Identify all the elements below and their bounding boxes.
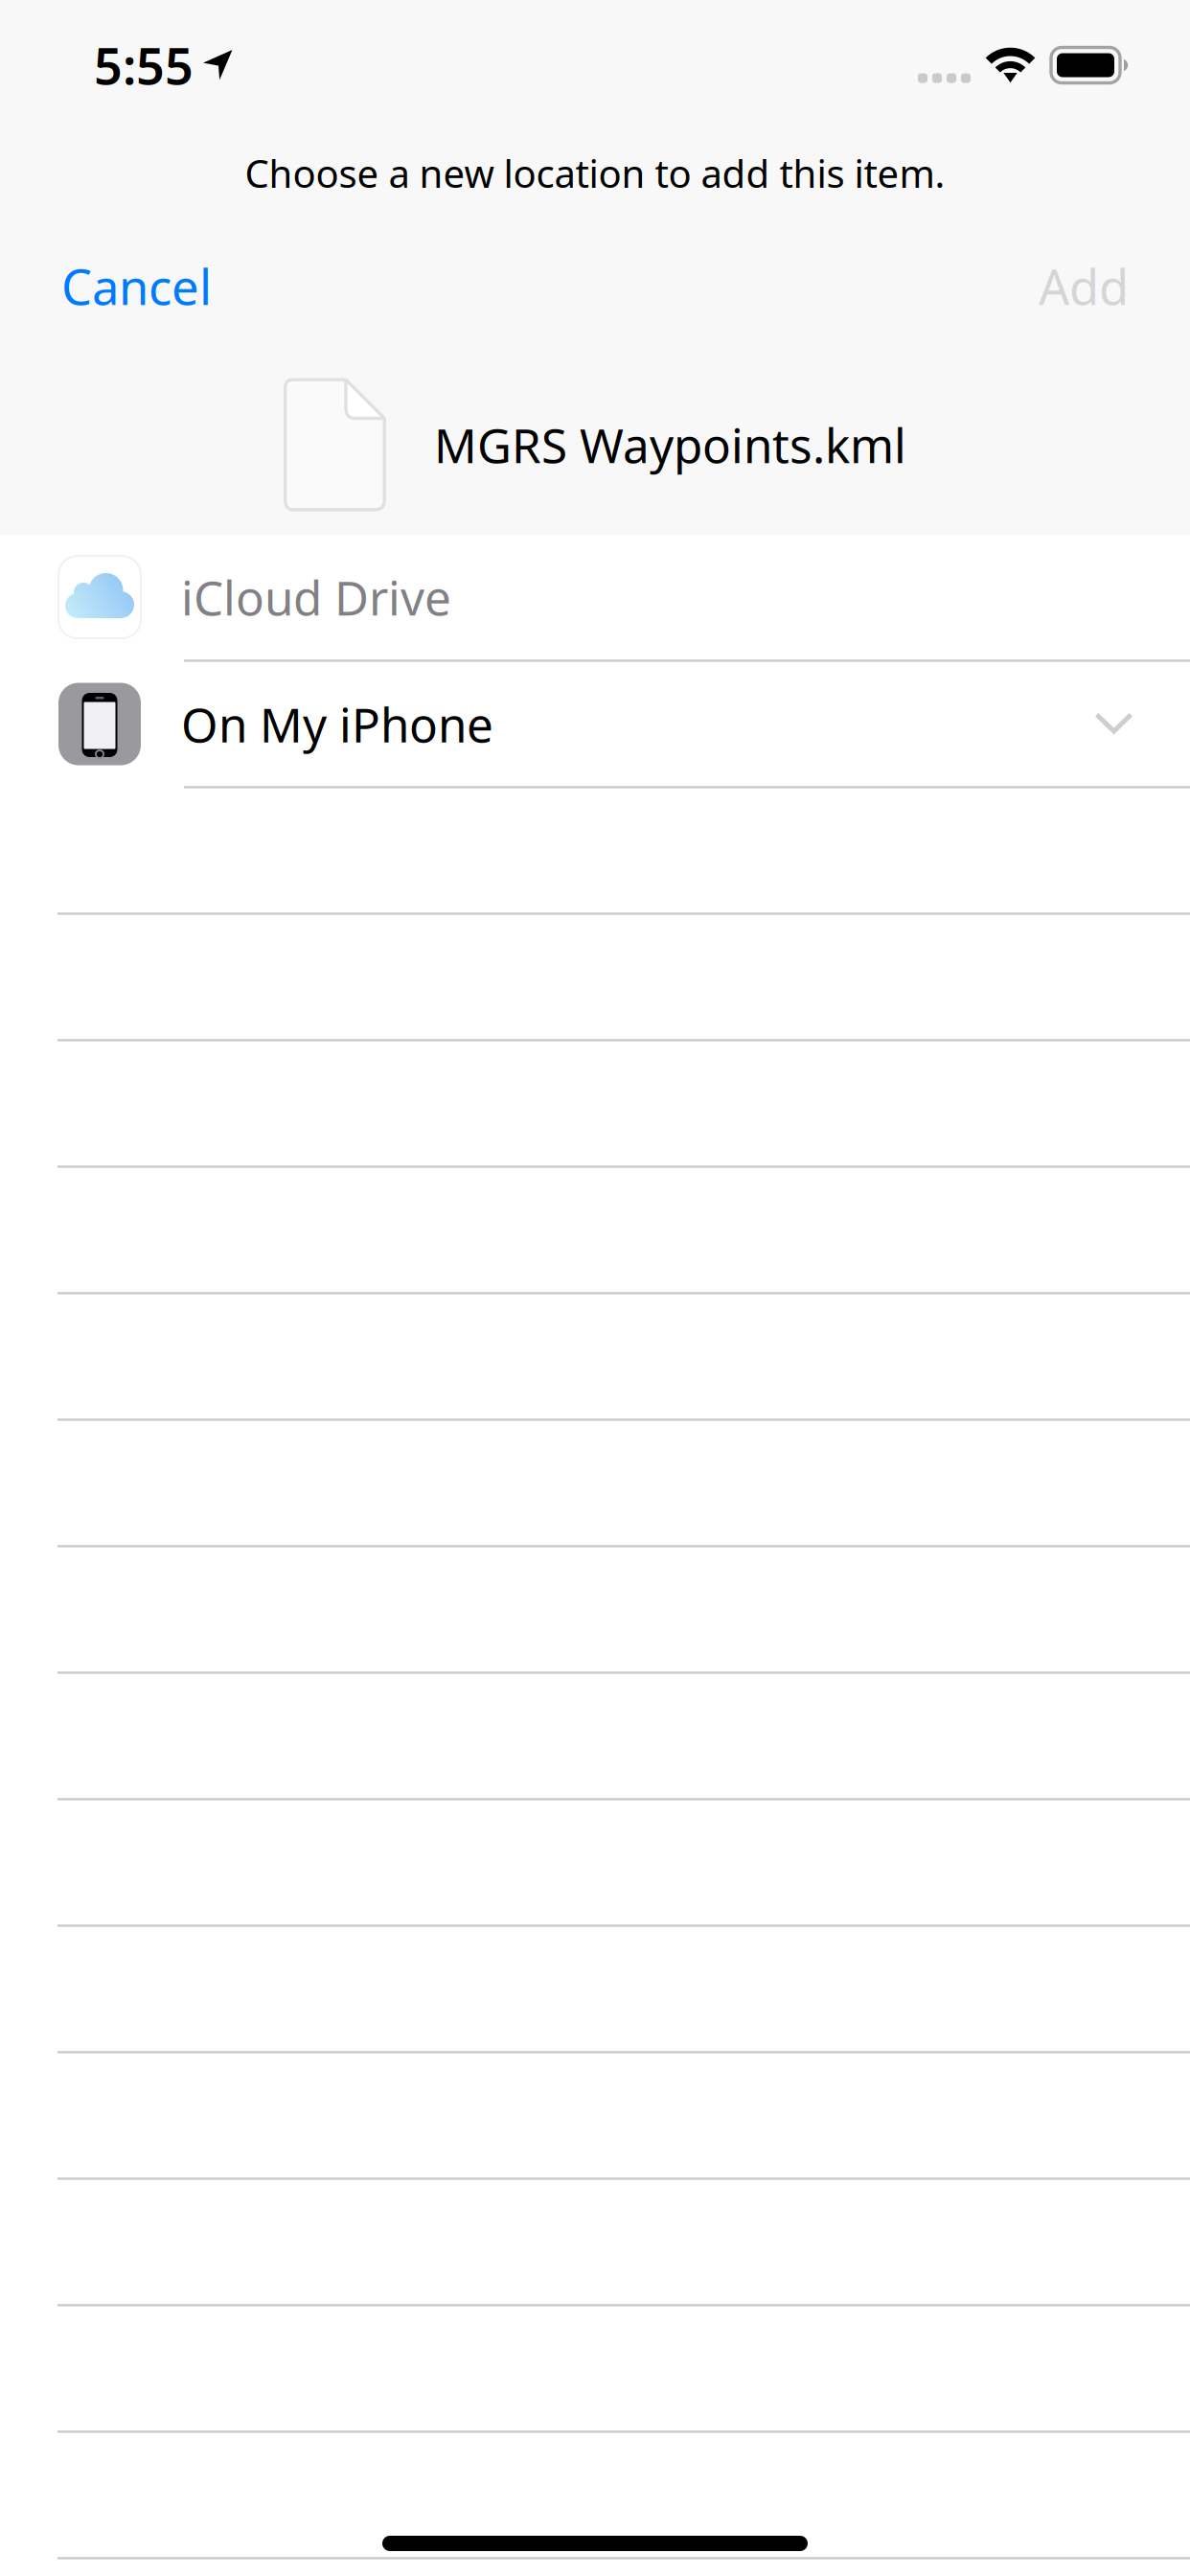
staticText: MGRS Waypoints.kml <box>434 413 906 476</box>
button[interactable]: iCloud Drive <box>0 535 1190 659</box>
button[interactable]: On My iPhone <box>0 662 1190 786</box>
button[interactable]: Add <box>1039 216 1129 356</box>
staticText: Choose a new location to add this item. <box>245 147 945 198</box>
staticText: Add <box>1039 254 1129 318</box>
staticText: 5:55 <box>94 32 194 98</box>
staticText: Cancel <box>61 254 212 318</box>
button[interactable]: Cancel <box>61 216 212 356</box>
staticText: iCloud Drive <box>181 566 451 628</box>
staticText: On My iPhone <box>181 693 493 755</box>
